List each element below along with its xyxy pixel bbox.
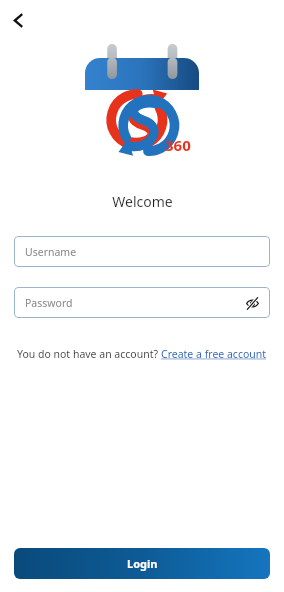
button[interactable]: Password <box>14 287 270 318</box>
staticText: You do not have an account? <box>17 347 161 361</box>
staticText: Login <box>127 556 158 571</box>
staticText: Username <box>25 245 77 259</box>
button[interactable]: Username <box>14 236 270 267</box>
staticText: Welcome <box>112 192 173 211</box>
staticText: Create a free account <box>161 347 267 361</box>
button[interactable]: Show password <box>242 293 262 313</box>
button[interactable]: Login <box>14 548 270 579</box>
staticText: Password <box>25 296 73 310</box>
button[interactable]: Back <box>2 4 34 36</box>
button[interactable]: Create a free account <box>161 347 267 361</box>
staticText: 360 <box>165 135 191 155</box>
